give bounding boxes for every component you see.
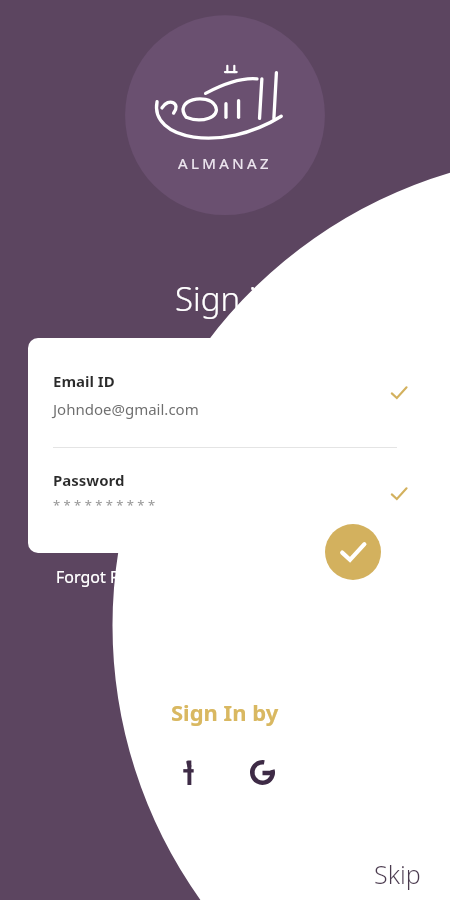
- button[interactable]: Submit sign in: [325, 524, 381, 580]
- staticText: * * * * * * * * * *: [53, 496, 156, 514]
- staticText: Sign In by: [171, 697, 279, 727]
- staticText: Forgot Password?: [56, 566, 190, 588]
- button[interactable]: Sign in with Google: [239, 749, 285, 795]
- staticText: Sign in: [175, 276, 276, 321]
- button[interactable]: Password: [28, 448, 422, 553]
- staticText: ALMANAZ: [178, 153, 273, 173]
- button[interactable]: Forgot Password?: [50, 562, 196, 592]
- button[interactable]: Email ID: [28, 338, 422, 447]
- button[interactable]: Skip: [366, 851, 429, 897]
- button[interactable]: Sign in with Facebook: [166, 749, 212, 795]
- staticText: Password: [53, 470, 125, 490]
- staticText: Johndoe@gmail.com: [53, 399, 199, 419]
- staticText: Skip: [374, 857, 421, 891]
- staticText: Email ID: [53, 371, 115, 391]
